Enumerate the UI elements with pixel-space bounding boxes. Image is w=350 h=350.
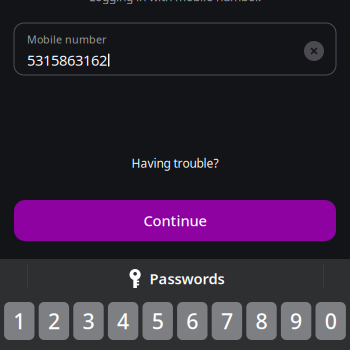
staticText: 0 [325, 307, 337, 335]
button[interactable]: 2 [39, 302, 69, 340]
staticText: 5 [152, 307, 164, 335]
staticText: 8 [255, 307, 267, 335]
staticText: Logging in with mobile number. [89, 0, 261, 4]
staticText: Passwords [149, 269, 224, 288]
staticText: 1 [13, 307, 25, 335]
button[interactable]: 1 [4, 302, 34, 340]
staticText: 9 [290, 307, 302, 335]
staticText: 5315863162 [27, 50, 107, 70]
button[interactable]: 6 [177, 302, 207, 340]
button[interactable]: Continue [14, 200, 336, 241]
button[interactable]: Clear text [300, 35, 328, 63]
staticText: 3 [82, 307, 94, 335]
staticText: Mobile number [27, 32, 106, 46]
button[interactable]: 4 [108, 302, 138, 340]
button[interactable]: 0 [315, 302, 346, 340]
staticText: Having trouble? [131, 155, 218, 171]
staticText: Continue [143, 211, 206, 230]
button[interactable]: 8 [246, 302, 277, 340]
button[interactable]: 3 [73, 302, 104, 340]
staticText: 4 [117, 307, 129, 335]
staticText: 2 [48, 307, 60, 335]
button[interactable]: 5 [142, 302, 173, 340]
button[interactable]: 7 [212, 302, 242, 340]
button[interactable]: Having trouble? [123, 150, 226, 176]
staticText: 6 [186, 307, 198, 335]
staticText: 7 [221, 307, 233, 335]
button[interactable]: 9 [281, 302, 311, 340]
button[interactable]: Passwords [117, 265, 232, 296]
